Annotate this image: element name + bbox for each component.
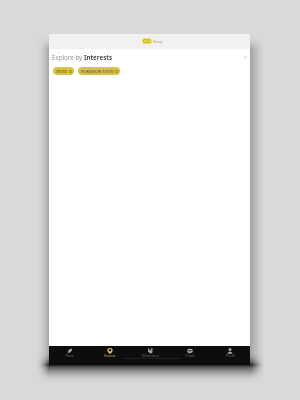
staticText: Biblioteca	[142, 353, 159, 358]
button[interactable]: Biblioteca	[130, 346, 170, 359]
staticText: Explore by	[52, 53, 84, 61]
staticText: Perfil	[226, 353, 235, 358]
button[interactable]: Perfil	[210, 346, 250, 359]
staticText: Chats	[185, 353, 195, 358]
button[interactable]: TESTE	[53, 67, 74, 75]
button[interactable]: Chats	[170, 346, 210, 359]
staticText: Story	[153, 39, 163, 44]
staticText: TESTE	[56, 69, 68, 74]
staticText: Buscar	[104, 353, 116, 358]
staticText: Interests	[84, 53, 113, 61]
staticText: POKEMON TESTE	[81, 69, 114, 74]
button[interactable]: See all interests	[243, 55, 248, 60]
staticText: Feed	[65, 353, 74, 358]
button[interactable]: App logo	[142, 38, 163, 44]
button[interactable]: Buscar	[90, 346, 130, 359]
button[interactable]: Feed	[49, 346, 90, 359]
button[interactable]: POKEMON TESTE	[78, 67, 120, 75]
